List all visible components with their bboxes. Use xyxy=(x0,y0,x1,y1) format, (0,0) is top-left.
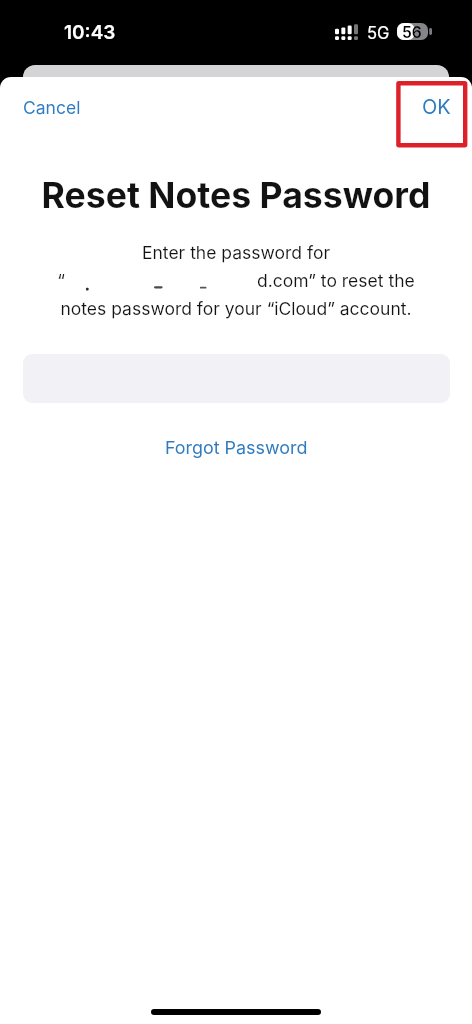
staticText: 56 xyxy=(402,23,422,40)
staticText: Cancel xyxy=(23,97,81,118)
staticText: 10:43 xyxy=(64,21,116,44)
other: Cellular signal xyxy=(335,24,358,40)
staticText: Enter the password for “ d.com” to reset… xyxy=(16,242,456,320)
staticText: OK xyxy=(422,95,451,119)
staticText: Forgot Password xyxy=(165,437,308,459)
staticText: 5G xyxy=(367,23,390,43)
button[interactable]: Forgot Password xyxy=(151,431,322,465)
button[interactable]: Cancel xyxy=(0,87,101,128)
other: Battery 56 percent xyxy=(397,23,428,40)
button[interactable]: OK xyxy=(402,85,472,129)
staticText: Reset Notes Password xyxy=(0,174,472,217)
